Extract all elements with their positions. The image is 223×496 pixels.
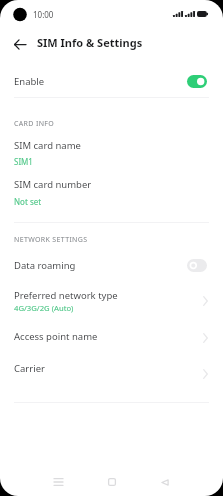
- staticText: 4G/3G/2G (Auto): [14, 303, 74, 313]
- staticText: Preferred network type: [14, 289, 118, 302]
- staticText: CARD INFO: [14, 119, 55, 129]
- button[interactable]: [0, 284, 223, 320]
- button[interactable]: Home: [90, 464, 134, 496]
- staticText: Data roaming: [14, 259, 76, 272]
- button[interactable]: Back: [4, 28, 36, 60]
- button[interactable]: Enable: [0, 65, 223, 98]
- staticText: Not set: [14, 196, 42, 207]
- staticText: SIM card number: [14, 178, 92, 191]
- button[interactable]: [0, 324, 223, 352]
- staticText: Enable: [14, 75, 45, 88]
- button[interactable]: Back: [143, 464, 187, 496]
- staticText: NETWORK SETTINGS: [14, 235, 88, 245]
- button[interactable]: Data roaming: [0, 253, 223, 278]
- button[interactable]: Recent apps: [36, 464, 80, 496]
- staticText: SIM Info & Settings: [37, 35, 143, 50]
- staticText: SIM1: [14, 156, 33, 167]
- button[interactable]: [0, 356, 223, 384]
- staticText: Access point name: [14, 330, 98, 343]
- staticText: 10:00: [33, 9, 54, 20]
- staticText: Carrier: [14, 362, 45, 375]
- staticText: SIM card name: [14, 139, 81, 152]
